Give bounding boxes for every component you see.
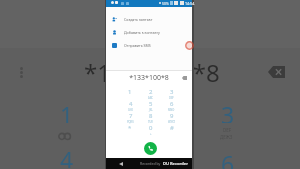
button[interactable]: Back [118,161,124,167]
button[interactable]: 7 [120,112,140,124]
staticText: Создать контакт [124,17,153,22]
staticText: JKL [149,108,153,112]
staticText: *133*100*8 [116,73,182,83]
button[interactable]: 1 [120,88,140,100]
staticText: DU Recorder [163,161,188,166]
staticText: 0 [149,124,153,132]
button[interactable]: 1 [56,99,78,123]
staticText: 2 [149,88,153,96]
button[interactable]: 6 [217,148,239,169]
staticText: DEF [169,96,174,100]
staticText: 3 [221,99,235,123]
button[interactable]: 3 [217,99,239,123]
button[interactable]: 4 [120,100,140,112]
button[interactable]: * [120,124,140,136]
staticText: 4 [129,100,133,108]
staticText: ABC [148,96,153,100]
staticText: 14:54 [185,1,195,6]
button[interactable]: 4 [56,144,78,168]
staticText: Добавить к контакту [124,30,160,35]
staticText: 6 [221,148,235,169]
button[interactable]: 5 [140,100,161,112]
staticText: 4 [60,144,74,168]
staticText: *133*100*8 [84,56,220,89]
staticText: PQRS [127,120,134,124]
staticText: 1 [60,99,74,123]
staticText: MNO [168,108,175,112]
staticText: 8 [149,112,153,120]
staticText: Отправить SMS [124,43,151,48]
button[interactable]: # [161,124,182,136]
staticText: # [170,124,174,132]
button[interactable]: Отправить SMS [106,39,192,52]
staticText: ДЕЖЗ [220,134,233,140]
button[interactable]: 0 [140,124,161,136]
button[interactable]: Call [144,142,157,155]
staticText: 7 [129,112,133,120]
staticText: 5 [149,100,153,108]
button[interactable]: 2 [140,88,161,100]
staticText: 9 [170,112,174,120]
staticText: 50% [162,1,169,6]
staticText: + [150,132,152,136]
staticText: WXYZ [168,120,175,124]
button[interactable]: 3 [161,88,182,100]
button[interactable]: 8 [140,112,161,124]
button[interactable]: Создать контакт [106,13,192,26]
staticText: 6 [170,100,174,108]
button[interactable]: Добавить к контакту [106,26,192,39]
staticText: 1 [128,88,132,96]
button[interactable]: 9 [161,112,182,124]
staticText: * [128,124,132,132]
staticText: TUV [148,120,153,124]
staticText: DEF [223,127,232,133]
staticText: Recorded by [140,161,161,166]
staticText: GHI [128,108,133,112]
button[interactable]: 6 [161,100,182,112]
staticText: 3 [170,88,174,96]
